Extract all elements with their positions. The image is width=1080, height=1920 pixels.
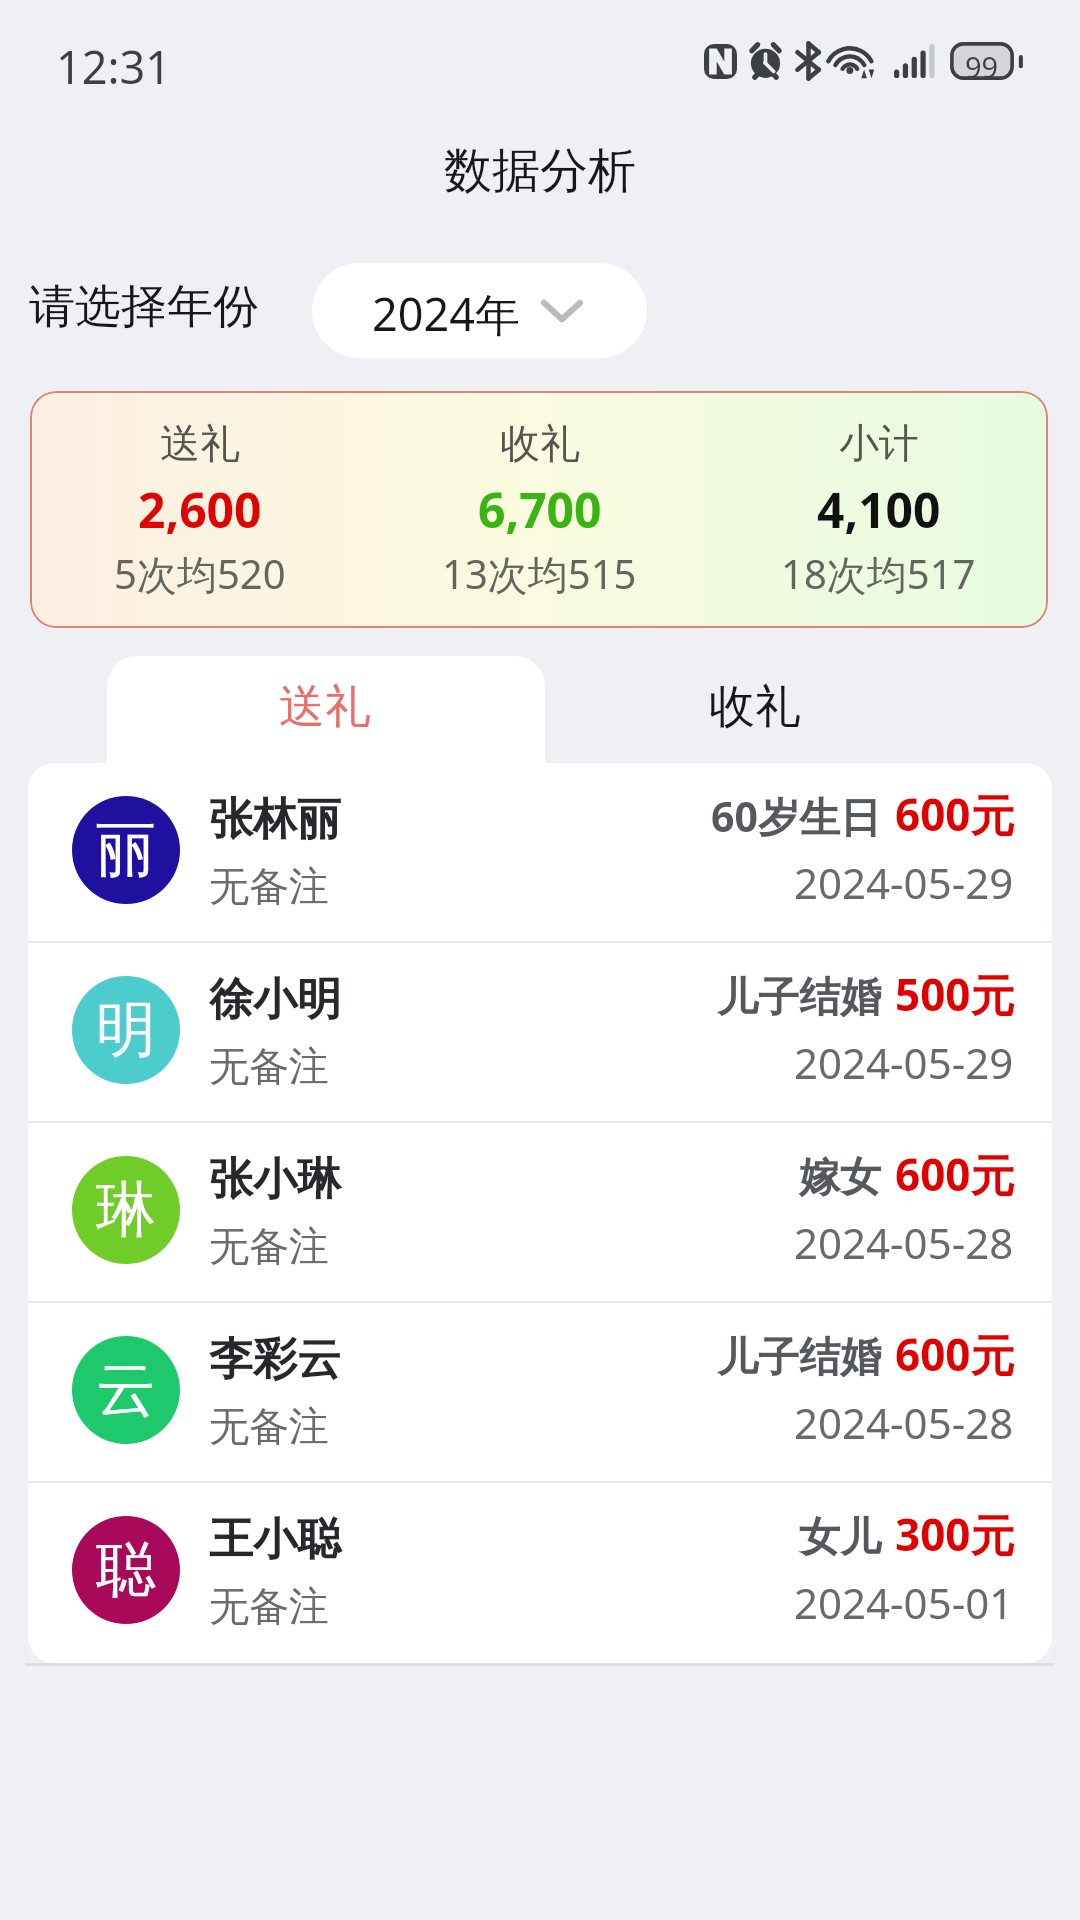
staticText: 2024年 — [372, 283, 520, 344]
staticText: 12:31 — [56, 36, 172, 97]
staticText: 2,600 — [138, 477, 262, 542]
button[interactable]: 云 — [28, 1303, 1052, 1481]
staticText: 儿子结婚 — [717, 972, 881, 1024]
staticText: 18次均517 — [781, 546, 976, 601]
staticText: 张林丽 — [209, 792, 341, 847]
staticText: 13次均515 — [442, 546, 637, 601]
staticText: 2024-05-29 — [794, 1034, 1014, 1091]
staticText: 60岁生日 — [711, 788, 881, 844]
staticText: 6,700 — [478, 477, 602, 542]
staticText: 600元 — [895, 784, 1015, 844]
staticText: 2024-05-01 — [794, 1574, 1014, 1631]
staticText: 嫁女 — [799, 1152, 881, 1204]
staticText: 女儿 — [799, 1512, 881, 1564]
staticText: 请选择年份 — [29, 278, 259, 336]
button[interactable]: 聪 — [28, 1483, 1052, 1661]
staticText: 徐小明 — [209, 972, 341, 1027]
staticText: 无备注 — [209, 1581, 329, 1631]
staticText: 无备注 — [209, 1041, 329, 1091]
staticText: 小计 — [839, 418, 919, 468]
staticText: 云 — [96, 1352, 156, 1428]
staticText: 收礼 — [500, 418, 580, 468]
button[interactable]: 琳 — [28, 1123, 1052, 1301]
staticText: 5次均520 — [114, 546, 286, 601]
staticText: 丽 — [96, 812, 156, 888]
staticText: 送礼 — [279, 678, 371, 736]
staticText: 2024-05-28 — [794, 1214, 1014, 1271]
staticText: 无备注 — [209, 861, 329, 911]
staticText: 数据分析 — [444, 141, 636, 201]
staticText: 明 — [96, 992, 156, 1068]
staticText: 2024-05-28 — [794, 1394, 1014, 1451]
staticText: 张小琳 — [209, 1152, 341, 1207]
button[interactable]: 丽 — [28, 763, 1052, 941]
button[interactable]: 收礼 — [545, 656, 975, 763]
staticText: 2024-05-29 — [794, 854, 1014, 911]
staticText: 600元 — [895, 1324, 1015, 1384]
staticText: 聪 — [96, 1532, 156, 1608]
staticText: 琳 — [96, 1172, 156, 1248]
staticText: 收礼 — [709, 678, 801, 736]
staticText: 王小聪 — [209, 1512, 341, 1567]
staticText: 无备注 — [209, 1401, 329, 1451]
button[interactable]: 明 — [28, 943, 1052, 1121]
staticText: 无备注 — [209, 1221, 329, 1271]
staticText: 4,100 — [817, 477, 941, 542]
staticText: 500元 — [895, 964, 1015, 1024]
staticText: 儿子结婚 — [717, 1332, 881, 1384]
staticText: 99 — [965, 47, 999, 85]
staticText: 300元 — [895, 1504, 1015, 1564]
staticText: 送礼 — [160, 418, 240, 468]
button[interactable]: 送礼 — [107, 656, 545, 766]
staticText: 600元 — [895, 1144, 1015, 1204]
staticText: 李彩云 — [209, 1332, 341, 1387]
button[interactable]: 选择年份 — [312, 263, 647, 358]
